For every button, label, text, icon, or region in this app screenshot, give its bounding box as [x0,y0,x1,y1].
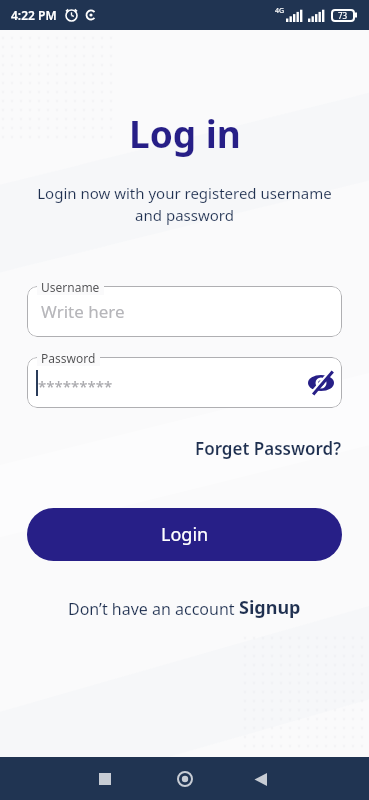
staticText: 4:22 PM [11,7,57,23]
button[interactable] [92,766,118,792]
staticText: Log in [129,108,241,158]
staticText: Don’t have an account [68,598,239,620]
staticText: Login [161,522,209,547]
button[interactable]: ********* [27,357,342,408]
staticText: Write here [41,300,125,323]
button[interactable]: Signup [239,595,301,620]
staticText: Login now with your registered username … [37,183,332,226]
staticText: 73 [338,10,348,21]
button[interactable] [247,766,273,792]
button[interactable]: Forget Password? [195,437,342,460]
button[interactable] [307,371,335,395]
button[interactable]: Login [27,508,342,561]
staticText: ********* [38,376,113,396]
button[interactable]: Write here [27,286,342,337]
button[interactable] [172,766,198,792]
staticText: Password [41,350,96,366]
staticText: 4G [275,6,285,16]
staticText: Username [41,279,100,295]
